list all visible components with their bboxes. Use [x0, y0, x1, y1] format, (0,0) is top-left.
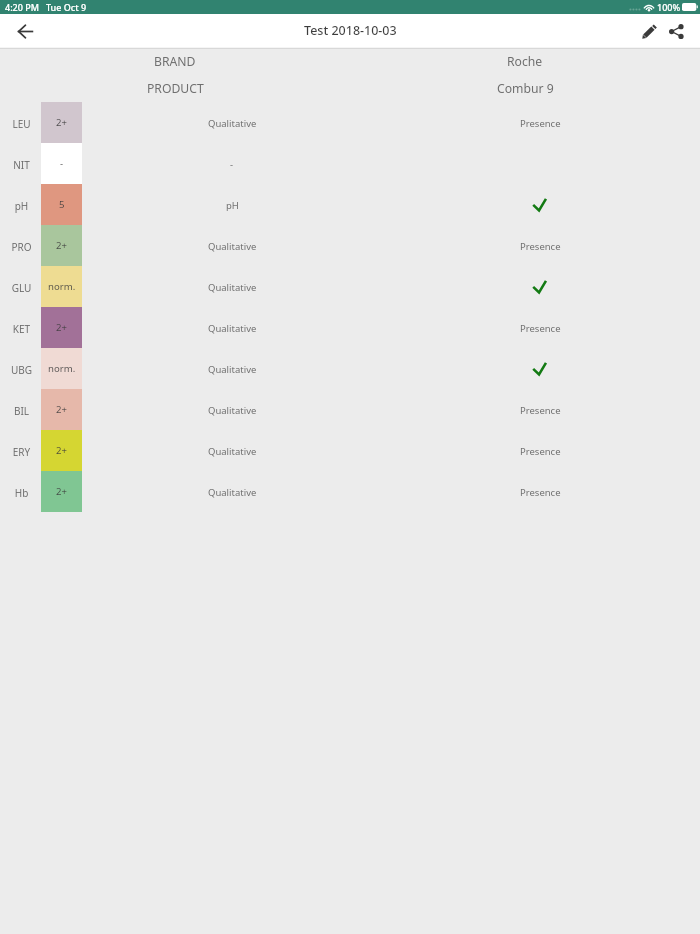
button[interactable]: Hb	[0, 471, 700, 512]
button[interactable]: ERY	[0, 430, 700, 471]
staticText: Qualitative	[208, 240, 257, 253]
staticText: KET	[8, 322, 35, 336]
staticText: LEU	[8, 117, 35, 131]
button[interactable]: Back	[10, 16, 40, 46]
staticText: -	[60, 157, 64, 170]
staticText: PRO	[8, 240, 35, 254]
button[interactable]: PRO	[0, 225, 700, 266]
staticText: Tue Oct 9	[46, 1, 87, 13]
staticText: Qualitative	[208, 404, 257, 417]
staticText: Presence	[520, 404, 561, 417]
staticText: 4:20 PM	[5, 1, 39, 13]
button[interactable]: UBG	[0, 348, 700, 389]
staticText: UBG	[8, 363, 35, 377]
staticText: BRAND	[154, 53, 196, 70]
staticText: Qualitative	[208, 117, 257, 130]
staticText: ERY	[8, 445, 35, 459]
button[interactable]: Edit	[636, 16, 663, 46]
staticText: Hb	[8, 486, 35, 500]
staticText: PRODUCT	[147, 80, 204, 97]
staticText: Presence	[520, 117, 561, 130]
staticText: 2+	[56, 485, 67, 498]
staticText: BIL	[8, 404, 35, 418]
staticText: 2+	[56, 321, 67, 334]
staticText: Qualitative	[208, 445, 257, 458]
staticText: GLU	[8, 281, 35, 295]
staticText: 5	[59, 198, 65, 211]
staticText: 2+	[56, 116, 67, 129]
staticText: NIT	[8, 158, 35, 172]
staticText: pH	[8, 199, 35, 213]
staticText: Qualitative	[208, 486, 257, 499]
button[interactable]: BIL	[0, 389, 700, 430]
button[interactable]: pH	[0, 184, 700, 225]
staticText: Qualitative	[208, 322, 257, 335]
staticText: norm.	[48, 280, 76, 293]
staticText: 2+	[56, 403, 67, 416]
staticText: Qualitative	[208, 363, 257, 376]
staticText: -	[230, 158, 234, 171]
staticText: Presence	[520, 322, 561, 335]
staticText: pH	[226, 199, 239, 212]
staticText: 2+	[56, 239, 67, 252]
staticText: Combur 9	[497, 80, 554, 97]
staticText: Presence	[520, 445, 561, 458]
staticText: Presence	[520, 486, 561, 499]
button[interactable]: KET	[0, 307, 700, 348]
staticText: 100%	[657, 1, 681, 13]
staticText: 2+	[56, 444, 67, 457]
button[interactable]: GLU	[0, 266, 700, 307]
staticText: Test 2018-10-03	[304, 22, 397, 39]
staticText: norm.	[48, 362, 76, 375]
staticText: Roche	[507, 53, 543, 70]
staticText: Presence	[520, 240, 561, 253]
button[interactable]: NIT	[0, 143, 700, 184]
button[interactable]: LEU	[0, 102, 700, 143]
staticText: Qualitative	[208, 281, 257, 294]
button[interactable]: Share	[663, 16, 690, 46]
